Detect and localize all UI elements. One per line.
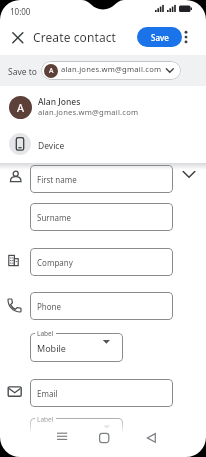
button[interactable]: Mobile [30, 333, 123, 362]
staticText: Company [37, 257, 73, 268]
staticText: Create contact [33, 29, 117, 45]
staticText: Surname [37, 212, 72, 223]
staticText: Save [151, 32, 169, 43]
staticText: Label [37, 329, 54, 338]
staticText: Label [37, 415, 54, 424]
button[interactable]: Surname [30, 203, 173, 231]
button[interactable]: Email [30, 379, 173, 407]
staticText: Save to [8, 66, 37, 78]
button[interactable] [179, 27, 193, 47]
button[interactable]: A [41, 61, 181, 80]
button[interactable] [8, 28, 28, 48]
button[interactable]: Phone [30, 292, 173, 320]
staticText: Mobile [37, 342, 66, 354]
button[interactable]: Home [30, 418, 123, 446]
staticText: Alan Jones [38, 96, 81, 108]
button[interactable] [181, 166, 197, 182]
button[interactable] [52, 427, 72, 447]
staticText: A [49, 66, 54, 76]
staticText: Home [37, 428, 63, 440]
staticText: Email [37, 388, 58, 399]
staticText: alan.jones.wm@gmail.com [38, 107, 139, 117]
staticText: A [17, 100, 25, 115]
button[interactable]: Device [0, 130, 206, 158]
staticText: First name [37, 174, 77, 185]
button[interactable]: First name [30, 165, 173, 193]
staticText: alan.jones.wm@gmail.com [61, 64, 162, 74]
staticText: Device [38, 140, 65, 152]
button[interactable]: A [0, 92, 206, 123]
button[interactable] [142, 428, 162, 448]
button[interactable]: Save [137, 27, 182, 47]
button[interactable] [94, 428, 114, 448]
staticText: 10:00 [10, 6, 31, 17]
button[interactable]: Company [30, 248, 173, 276]
staticText: Phone [37, 301, 62, 312]
